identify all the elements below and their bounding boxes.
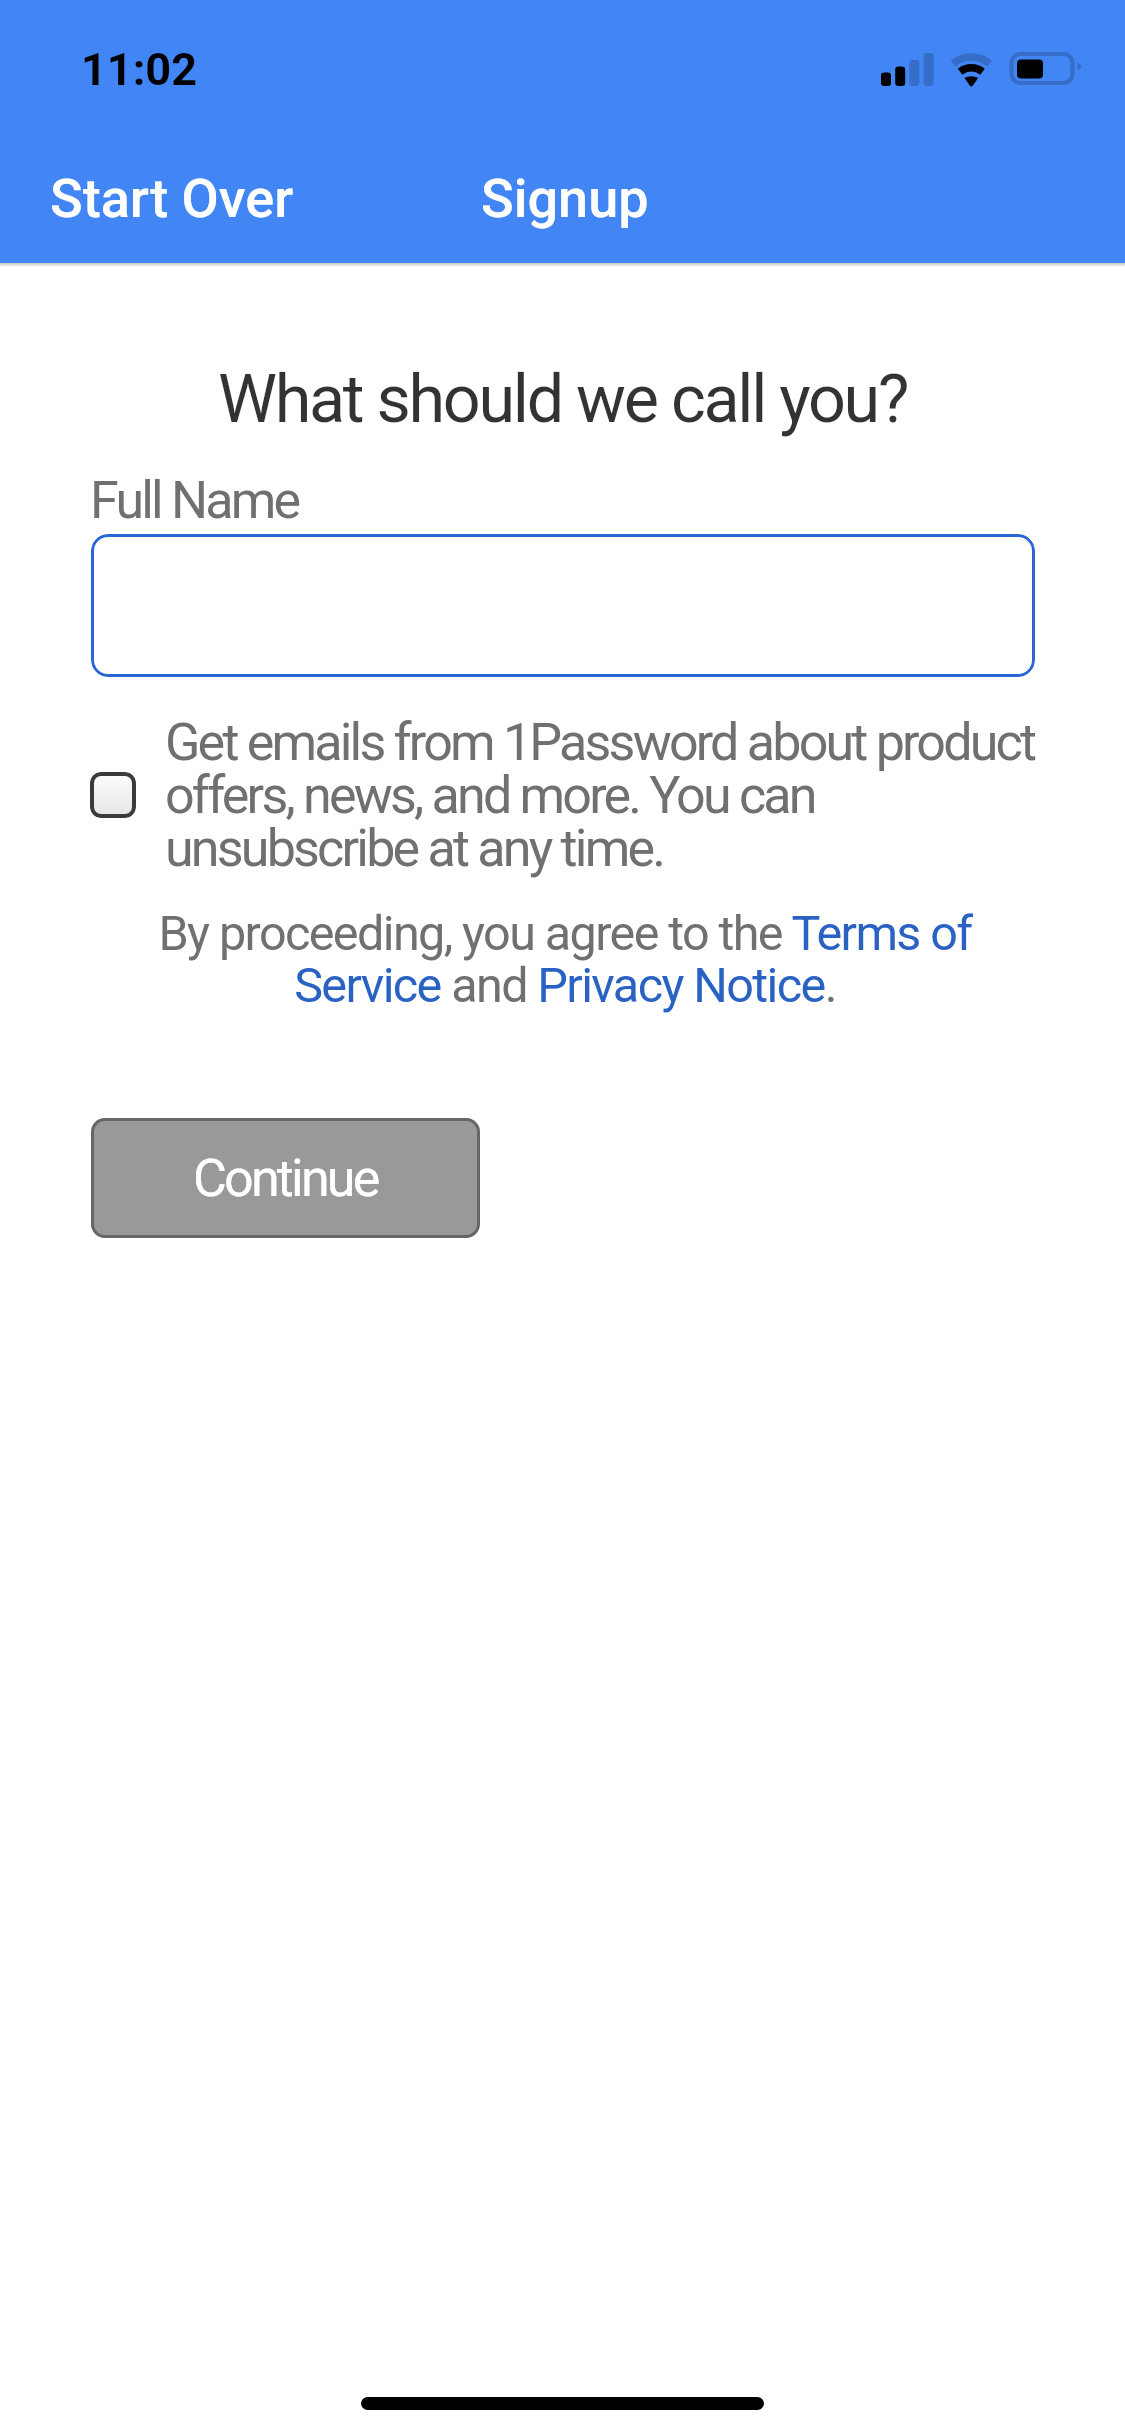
button[interactable]: Signup (467, 155, 663, 242)
staticText: 11:02 (81, 43, 197, 96)
button[interactable]: Terms of Service (293, 962, 445, 1010)
button[interactable]: Full Name input (91, 534, 1035, 677)
staticText: By proceeding, you agree to the Terms of… (145, 905, 985, 1014)
button[interactable]: Get emails from 1Password about product … (78, 705, 1053, 885)
button[interactable]: Continue (91, 1118, 480, 1238)
button[interactable]: Terms of Service (790, 908, 975, 956)
staticText: Full Name (90, 470, 299, 531)
button[interactable]: Privacy Notice (532, 962, 822, 1010)
button[interactable]: Start Over (36, 155, 308, 242)
staticText: What should we call you? (0, 360, 1125, 438)
staticText: Start Over (50, 167, 294, 230)
staticText: Signup (481, 167, 649, 230)
staticText: Continue (193, 1148, 378, 1209)
staticText: Get emails from 1Password about product … (165, 712, 1043, 879)
